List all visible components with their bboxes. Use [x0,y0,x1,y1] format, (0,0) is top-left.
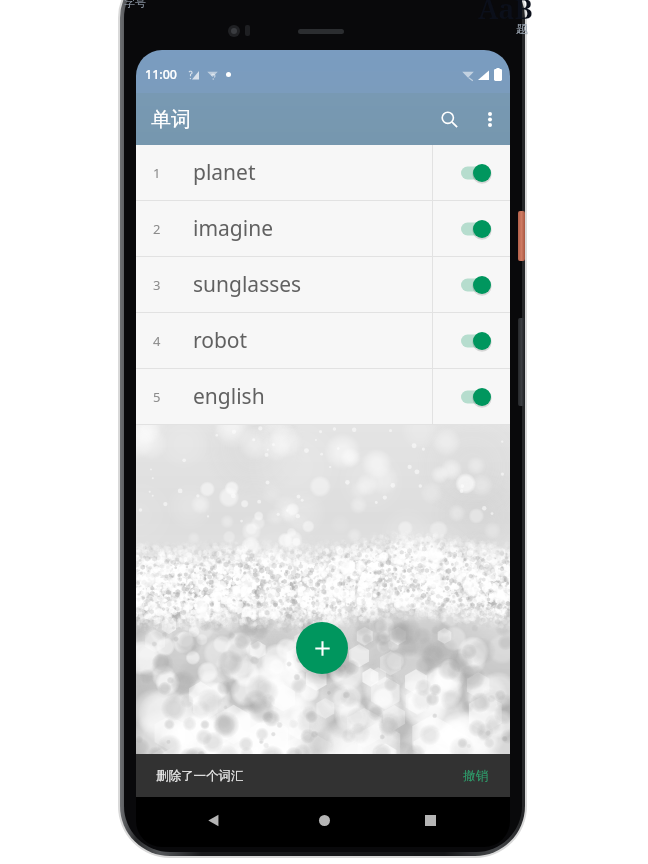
staticText: 单词 [151,107,191,132]
staticText: robot [193,326,432,355]
staticText: 1 [153,164,161,182]
staticText: 删除了一个词汇 [156,768,244,784]
staticText: 题 [516,21,528,36]
button[interactable]: Recents [407,797,453,843]
button[interactable]: More options [470,99,510,139]
staticText: 4 [153,332,161,350]
button[interactable]: Toggle word [453,323,501,359]
button[interactable]: Back [190,797,236,843]
staticText: AaB [478,0,533,27]
button[interactable]: 1 [136,145,510,200]
staticText: 2 [153,220,161,238]
staticText: imagine [193,214,432,243]
button[interactable]: Add word [296,622,348,674]
staticText: sunglasses [193,270,432,299]
staticText: 撤销 [463,768,488,784]
button[interactable]: Search [428,95,470,143]
button[interactable]: Home [301,797,347,843]
staticText: 5 [153,388,161,406]
button[interactable]: 5 [136,369,510,424]
staticText: english [193,382,432,411]
button[interactable]: 4 [136,313,510,368]
staticText: 3 [153,276,161,294]
button[interactable]: Toggle word [453,155,501,191]
staticText: planet [193,158,432,187]
button[interactable]: 3 [136,257,510,312]
button[interactable]: 2 [136,201,510,256]
staticText: 字号 [124,0,146,10]
button[interactable]: Toggle word [453,379,501,415]
button[interactable]: Toggle word [453,267,501,303]
staticText: 11:00 [145,66,178,83]
button[interactable]: 撤销 [441,757,510,795]
button[interactable]: Toggle word [453,211,501,247]
